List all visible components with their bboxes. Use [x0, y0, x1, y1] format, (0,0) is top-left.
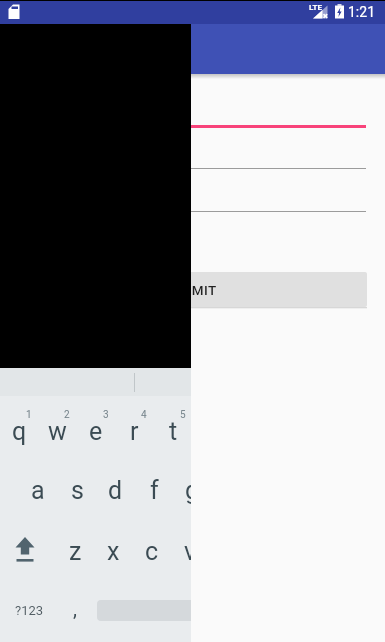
staticText: 5: [180, 409, 186, 421]
staticText: z: [69, 537, 82, 566]
button[interactable]: s: [58, 468, 96, 512]
button[interactable]: t: [154, 409, 191, 453]
button[interactable]: g: [173, 468, 191, 512]
button[interactable]: f: [135, 468, 173, 512]
button[interactable]: [19, 168, 366, 169]
staticText: LTE: [309, 3, 322, 12]
staticText: v: [184, 537, 191, 566]
staticText: q: [12, 417, 27, 446]
staticText: c: [145, 537, 159, 566]
button[interactable]: x: [94, 529, 132, 573]
button[interactable]: a: [19, 468, 57, 512]
staticText: d: [108, 476, 123, 505]
staticText: ,: [73, 597, 77, 620]
staticText: SUBMIT: [165, 282, 217, 298]
staticText: a: [31, 476, 45, 505]
staticText: f: [150, 476, 159, 505]
button[interactable]: [19, 211, 366, 212]
staticText: 2: [64, 409, 70, 421]
button[interactable]: r: [115, 409, 153, 453]
button[interactable]: [19, 125, 366, 128]
staticText: w: [48, 417, 67, 446]
staticText: e: [89, 417, 103, 446]
staticText: 4: [141, 409, 147, 421]
staticText: g: [185, 476, 191, 505]
staticText: s: [71, 476, 84, 505]
button[interactable]: SUBMIT: [19, 272, 367, 307]
staticText: x: [107, 537, 120, 566]
button[interactable]: ,: [56, 586, 94, 630]
button[interactable]: d: [96, 468, 134, 512]
button[interactable]: c: [133, 529, 171, 573]
button[interactable]: e: [77, 409, 115, 453]
button[interactable]: [8, 533, 44, 569]
staticText: 1:21: [348, 4, 375, 20]
button[interactable]: ?123: [4, 596, 54, 624]
button[interactable]: z: [56, 529, 94, 573]
staticText: ?123: [15, 603, 44, 618]
button[interactable]: w: [38, 409, 76, 453]
button[interactable]: q: [0, 409, 38, 453]
staticText: r: [130, 417, 139, 446]
staticText: t: [169, 417, 178, 446]
button[interactable]: v: [171, 529, 191, 573]
staticText: 1: [26, 409, 32, 421]
staticText: 3: [103, 409, 109, 421]
